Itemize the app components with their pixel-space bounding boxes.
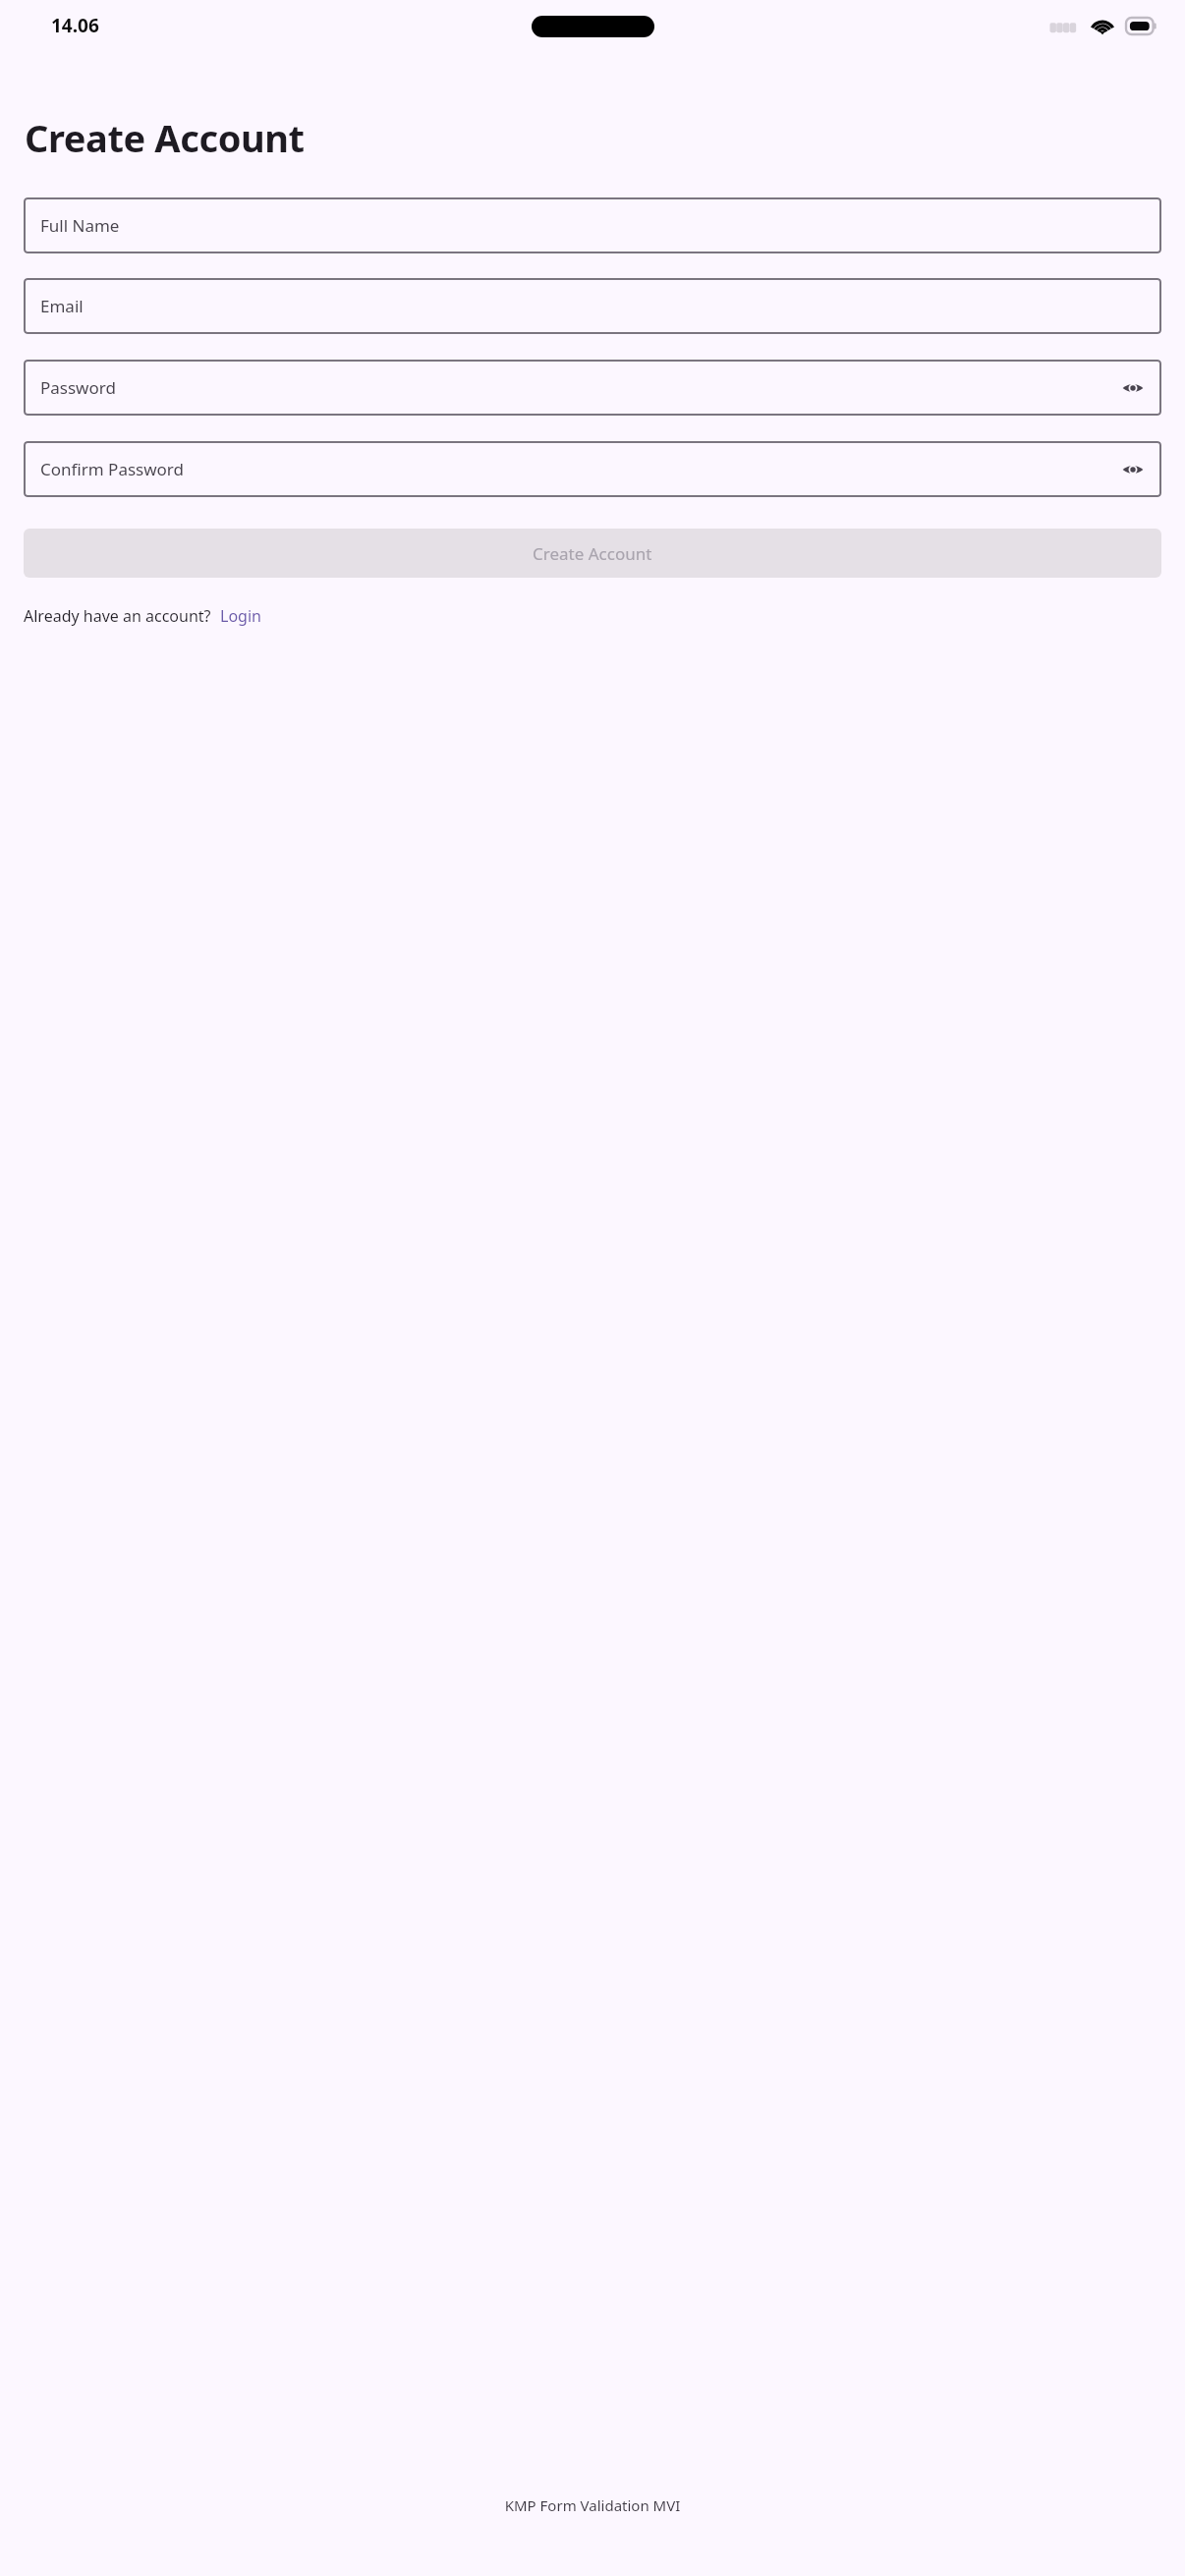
button[interactable]: Password: [24, 360, 1161, 416]
button[interactable]: Create Account: [24, 529, 1161, 578]
button[interactable]: Login: [220, 605, 261, 627]
button[interactable]: Full Name: [24, 197, 1161, 253]
staticText: Create Account: [25, 112, 305, 163]
staticText: Confirm Password: [40, 458, 184, 480]
staticText: Email: [40, 295, 84, 317]
staticText: Full Name: [40, 214, 120, 237]
button[interactable]: Toggle password visibility: [1118, 455, 1148, 484]
staticText: KMP Form Validation MVI: [0, 2495, 1185, 2515]
staticText: Password: [40, 376, 116, 399]
button[interactable]: Email: [24, 278, 1161, 334]
staticText: Create Account: [533, 542, 652, 565]
button[interactable]: Confirm Password: [24, 441, 1161, 497]
staticText: Already have an account?: [24, 605, 211, 627]
staticText: Login: [220, 605, 261, 627]
button[interactable]: Toggle password visibility: [1118, 373, 1148, 403]
staticText: 14.06: [51, 13, 99, 38]
